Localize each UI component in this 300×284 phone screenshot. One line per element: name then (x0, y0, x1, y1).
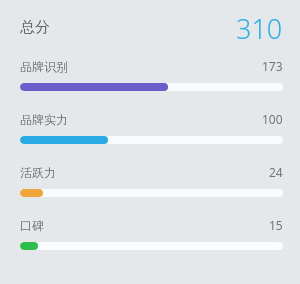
staticText: 173 (262, 58, 283, 74)
button[interactable]: 口碑 (20, 217, 283, 250)
staticText: 活跃力 (20, 165, 56, 180)
button[interactable]: 总分 (20, 10, 283, 44)
staticText: 100 (262, 111, 283, 127)
button[interactable]: 品牌实力 (20, 111, 283, 144)
button[interactable]: 品牌识别 (20, 58, 283, 91)
staticText: 品牌识别 (20, 59, 68, 74)
staticText: 24 (269, 164, 283, 180)
staticText: 310 (236, 10, 283, 44)
staticText: 口碑 (20, 218, 44, 233)
staticText: 总分 (20, 18, 50, 37)
staticText: 15 (269, 217, 283, 233)
staticText: 品牌实力 (20, 112, 68, 127)
button[interactable]: 活跃力 (20, 164, 283, 197)
